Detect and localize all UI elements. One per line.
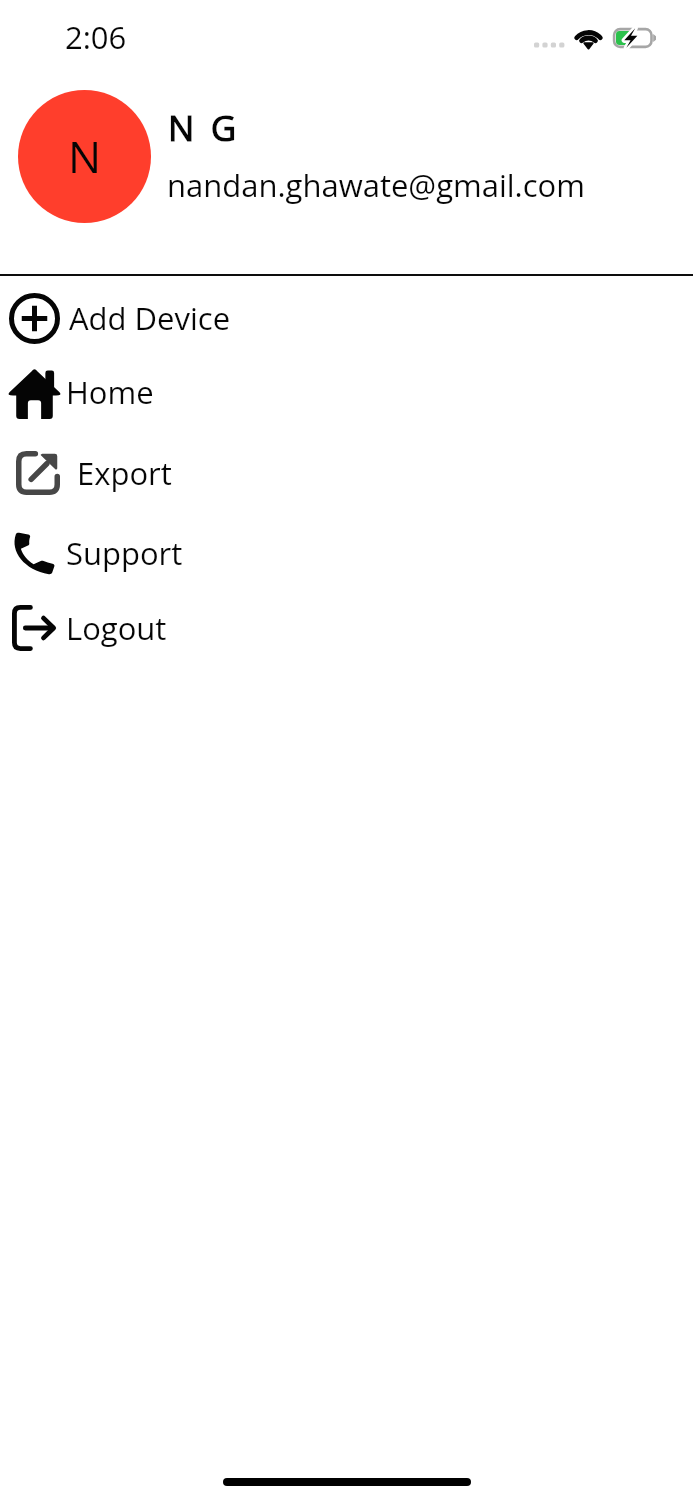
button[interactable]: Add Device xyxy=(0,278,693,358)
staticText: Add Device xyxy=(69,297,231,339)
button[interactable]: Logout xyxy=(0,588,693,668)
staticText: Support xyxy=(66,532,183,574)
staticText: Logout xyxy=(66,607,167,649)
button[interactable]: Home xyxy=(0,352,693,432)
staticText: nandan.ghawate@gmail.com xyxy=(167,164,585,206)
staticText: Export xyxy=(77,452,172,494)
staticText: Home xyxy=(66,371,154,413)
staticText: N G xyxy=(168,104,240,152)
button[interactable]: Support xyxy=(0,513,693,593)
button[interactable]: Account: N G, nandan.ghawate@gmail.com xyxy=(0,62,693,273)
staticText: N xyxy=(68,126,102,186)
staticText: 2:06 xyxy=(65,16,127,58)
button[interactable]: Export xyxy=(0,433,693,513)
